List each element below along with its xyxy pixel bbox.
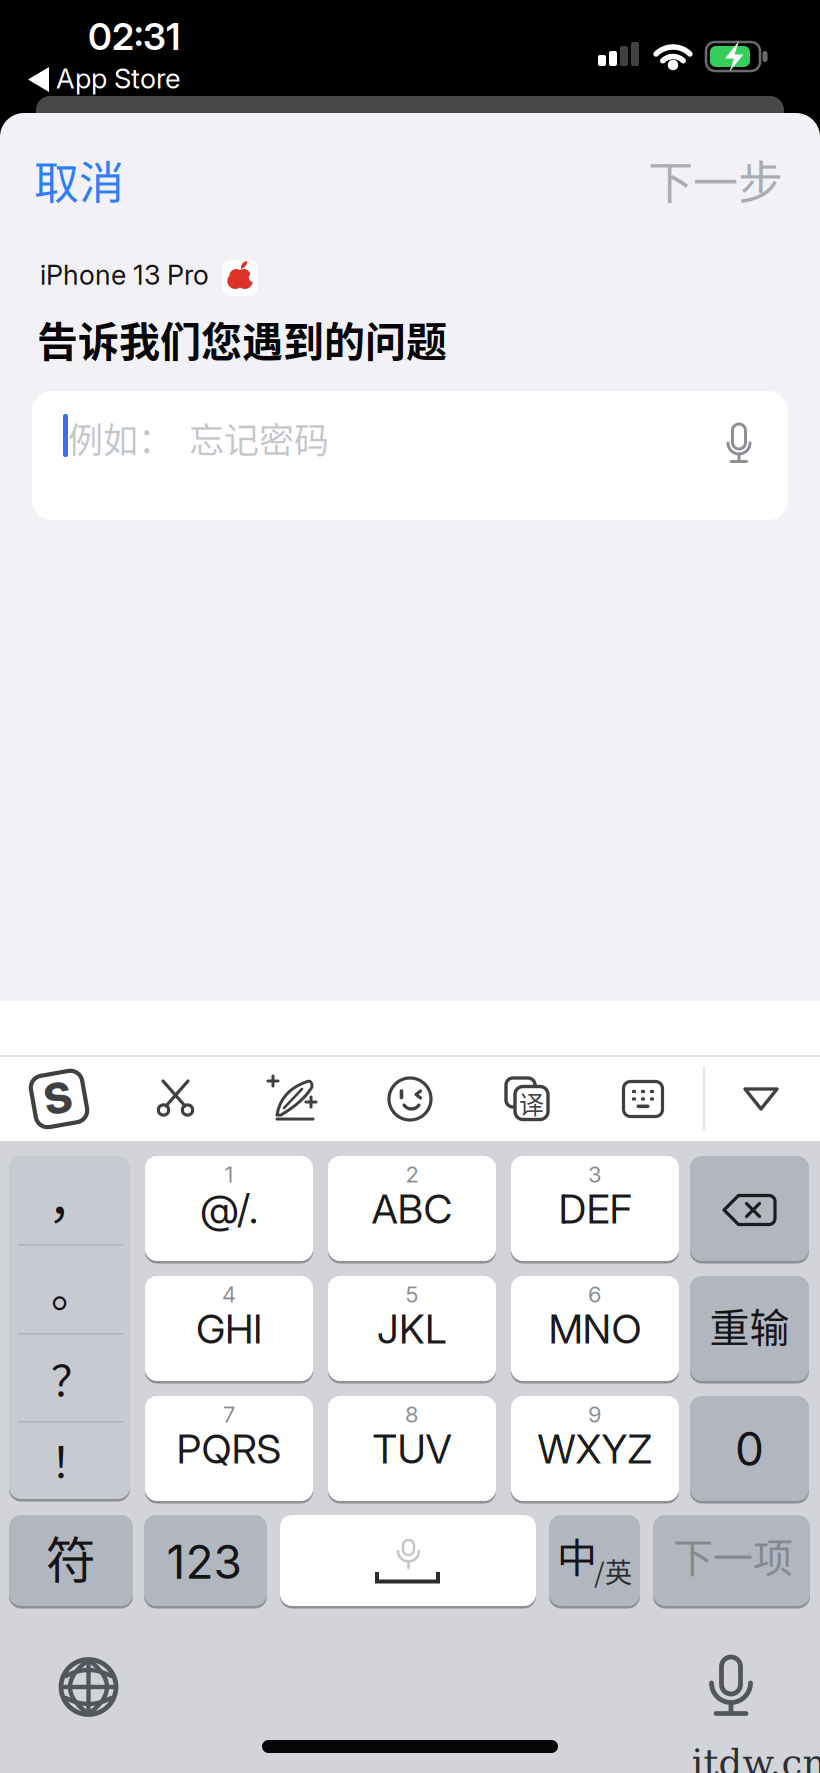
staticText: 符: [46, 1521, 96, 1593]
staticText: 4: [222, 1281, 236, 1308]
staticText: ，: [47, 1160, 97, 1232]
staticText: JKL: [377, 1305, 447, 1353]
staticText: itdw.cn: [691, 1741, 820, 1773]
staticText: GHI: [196, 1305, 262, 1353]
staticText: 6: [588, 1281, 602, 1308]
staticText: WXYZ: [537, 1425, 652, 1473]
staticText: 重输: [709, 1296, 789, 1354]
staticText: 告诉我们您遇到的问题: [37, 309, 447, 369]
staticText: S: [44, 1073, 72, 1123]
staticText: 例如： 忘记密码: [68, 413, 329, 463]
staticText: 9: [588, 1401, 602, 1428]
staticText: 下一项: [673, 1526, 793, 1584]
staticText: 5: [405, 1281, 418, 1308]
staticText: App Store: [56, 62, 181, 95]
staticText: TUV: [372, 1425, 451, 1473]
staticText: ABC: [371, 1185, 452, 1233]
staticText: 123: [166, 1534, 241, 1590]
staticText: 下一步: [648, 147, 783, 213]
staticText: 7: [223, 1401, 235, 1428]
staticText: ！: [50, 1429, 92, 1490]
staticText: 中: [557, 1526, 597, 1584]
staticText: 取消: [34, 147, 124, 213]
staticText: iPhone 13 Pro: [40, 259, 209, 291]
staticText: 3: [588, 1161, 602, 1188]
staticText: 02:31: [88, 14, 180, 59]
staticText: MNO: [548, 1305, 641, 1353]
staticText: 。: [51, 1256, 95, 1320]
staticText: 1: [224, 1161, 233, 1188]
staticText: DEF: [558, 1185, 631, 1233]
staticText: 0: [735, 1421, 764, 1477]
staticText: 2: [405, 1161, 418, 1188]
staticText: 8: [405, 1401, 419, 1428]
staticText: ？: [51, 1348, 93, 1408]
staticText: 译: [519, 1085, 544, 1121]
staticText: @/.: [200, 1185, 258, 1233]
staticText: /英: [594, 1551, 632, 1591]
staticText: PQRS: [176, 1425, 281, 1473]
